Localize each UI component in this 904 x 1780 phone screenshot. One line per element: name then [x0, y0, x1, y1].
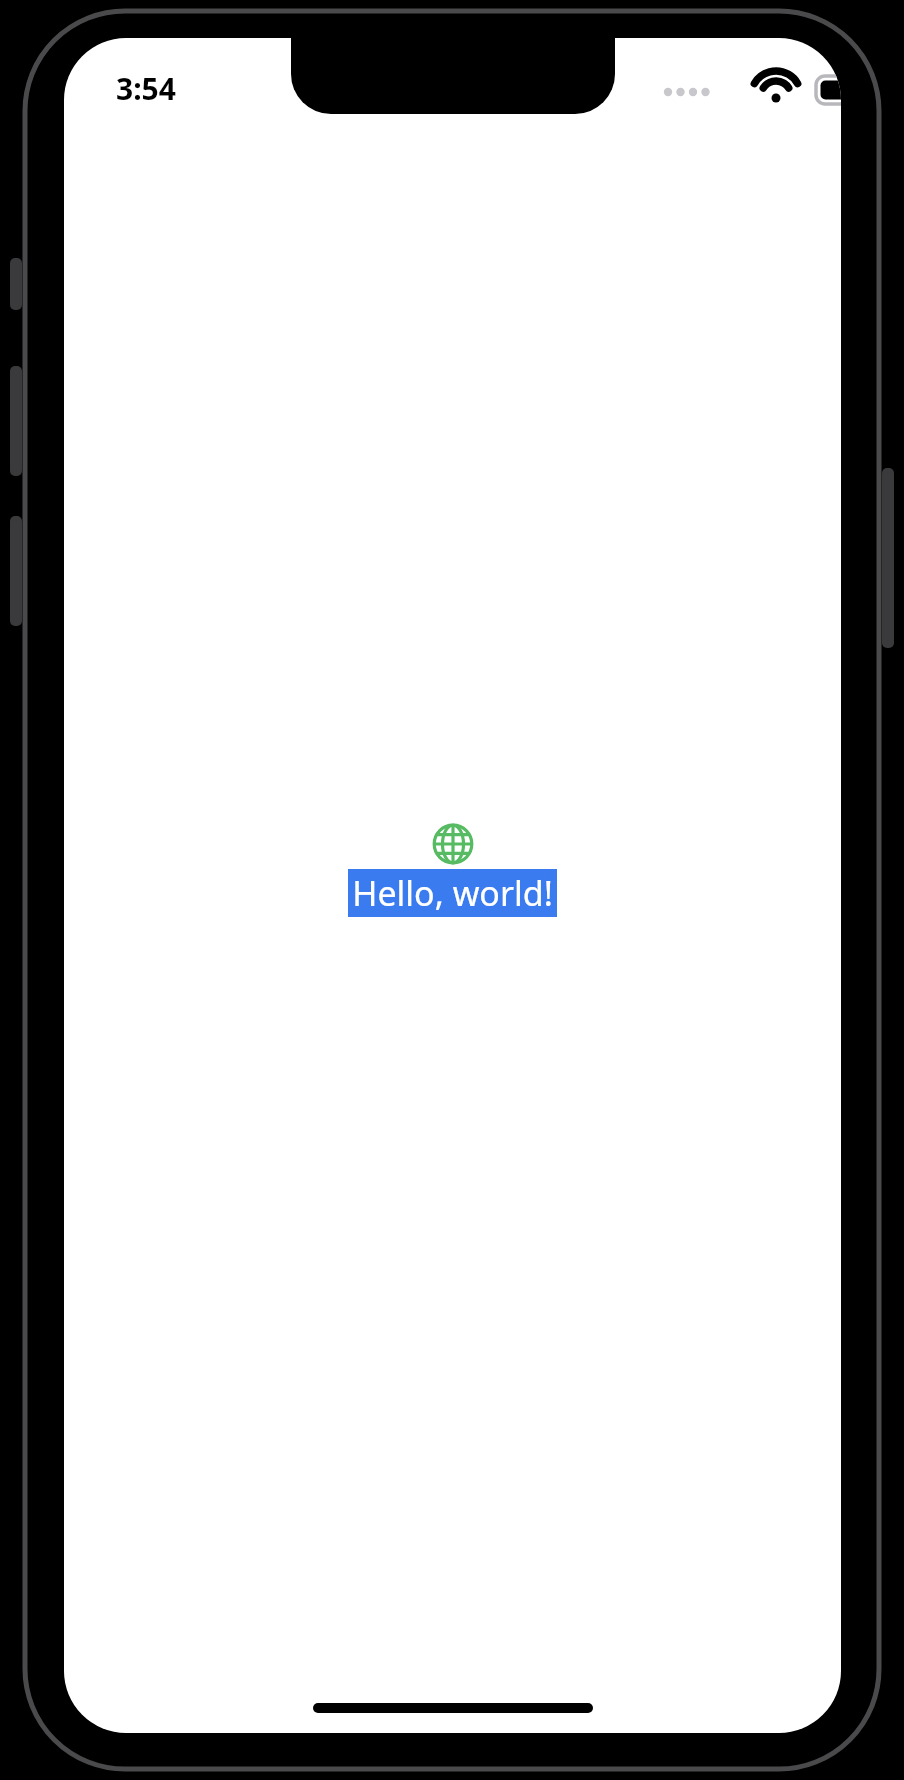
other: Globe — [432, 823, 474, 865]
staticText: 3:54 — [116, 68, 176, 109]
button[interactable]: Hello, world! — [348, 869, 557, 917]
staticText: Hello, world! — [352, 870, 553, 916]
